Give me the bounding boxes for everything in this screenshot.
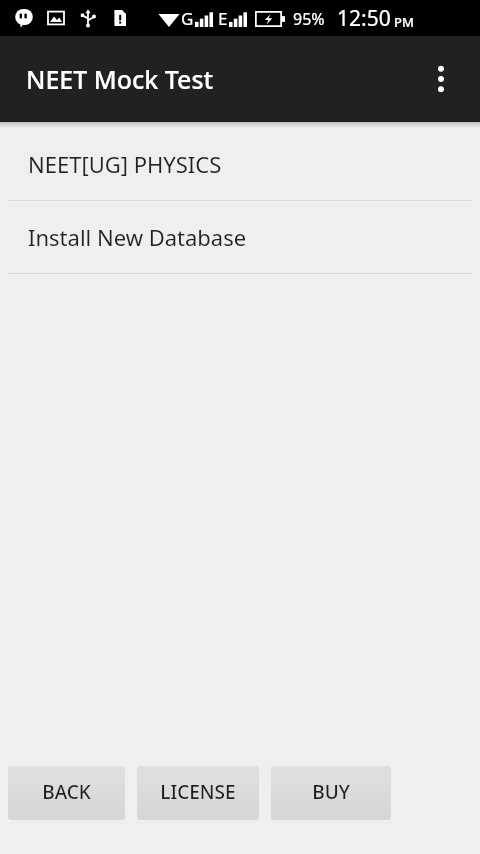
staticText: LICENSE bbox=[160, 779, 236, 805]
staticText: NEET Mock Test bbox=[26, 62, 214, 96]
button[interactable]: BACK bbox=[8, 766, 125, 818]
staticText: 12:50 bbox=[337, 4, 391, 33]
staticText: G bbox=[181, 7, 194, 30]
staticText: E bbox=[218, 7, 228, 30]
button[interactable]: LICENSE bbox=[137, 766, 259, 818]
button[interactable]: NEET[UG] PHYSICS bbox=[0, 128, 480, 200]
button[interactable]: More options bbox=[417, 55, 465, 103]
staticText: 95% bbox=[293, 8, 325, 30]
staticText: BACK bbox=[42, 779, 91, 805]
staticText: PM bbox=[394, 13, 414, 31]
staticText: NEET[UG] PHYSICS bbox=[28, 149, 222, 179]
staticText: BUY bbox=[312, 779, 350, 805]
staticText: Install New Database bbox=[28, 222, 247, 252]
button[interactable]: Install New Database bbox=[0, 201, 480, 273]
button[interactable]: BUY bbox=[271, 766, 391, 818]
